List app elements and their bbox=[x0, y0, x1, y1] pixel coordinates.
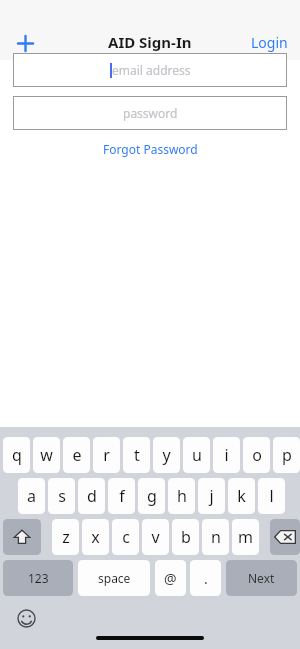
staticText: v bbox=[151, 526, 160, 548]
button[interactable]: Shift bbox=[3, 519, 41, 555]
button[interactable]: Emoji bbox=[14, 606, 38, 630]
staticText: @ bbox=[164, 569, 177, 588]
button[interactable]: a bbox=[18, 478, 45, 514]
button[interactable]: p bbox=[273, 437, 300, 473]
button[interactable]: x bbox=[82, 519, 109, 555]
button[interactable]: z bbox=[52, 519, 79, 555]
staticText: b bbox=[181, 526, 191, 548]
button[interactable]: email address bbox=[13, 53, 287, 87]
button[interactable]: h bbox=[168, 478, 195, 514]
staticText: Forgot Password bbox=[103, 141, 198, 157]
staticText: p bbox=[282, 444, 292, 466]
staticText: s bbox=[58, 485, 66, 507]
staticText: . bbox=[204, 569, 208, 588]
staticText: y bbox=[162, 444, 171, 466]
staticText: t bbox=[134, 444, 140, 466]
staticText: i bbox=[224, 444, 229, 466]
staticText: f bbox=[119, 485, 125, 507]
button[interactable]: t bbox=[123, 437, 150, 473]
staticText: g bbox=[147, 485, 157, 507]
button[interactable]: c bbox=[112, 519, 139, 555]
button[interactable]: o bbox=[243, 437, 270, 473]
button[interactable]: w bbox=[33, 437, 60, 473]
button[interactable]: Login bbox=[247, 29, 292, 56]
button[interactable]: b bbox=[172, 519, 199, 555]
staticText: h bbox=[177, 485, 187, 507]
button[interactable]: f bbox=[108, 478, 135, 514]
button[interactable]: l bbox=[258, 478, 285, 514]
staticText: Login bbox=[251, 33, 288, 52]
staticText: z bbox=[62, 526, 70, 548]
button[interactable]: n bbox=[202, 519, 229, 555]
staticText: password bbox=[123, 105, 178, 121]
staticText: Next bbox=[248, 570, 275, 586]
button[interactable]: y bbox=[153, 437, 180, 473]
staticText: l bbox=[269, 485, 274, 507]
button[interactable]: j bbox=[198, 478, 225, 514]
button[interactable]: Delete bbox=[270, 519, 300, 555]
button[interactable]: q bbox=[3, 437, 30, 473]
staticText: e bbox=[72, 444, 82, 466]
staticText: a bbox=[27, 485, 36, 507]
staticText: q bbox=[12, 444, 22, 466]
button[interactable]: i bbox=[213, 437, 240, 473]
button[interactable]: u bbox=[183, 437, 210, 473]
staticText: space bbox=[98, 570, 131, 586]
button[interactable]: k bbox=[228, 478, 255, 514]
staticText: j bbox=[209, 485, 214, 507]
staticText: m bbox=[238, 526, 253, 548]
staticText: d bbox=[87, 485, 97, 507]
button[interactable]: r bbox=[93, 437, 120, 473]
button[interactable]: g bbox=[138, 478, 165, 514]
button[interactable]: space bbox=[78, 560, 150, 596]
button[interactable]: m bbox=[232, 519, 259, 555]
button[interactable]: v bbox=[142, 519, 169, 555]
staticText: email address bbox=[112, 62, 191, 78]
button[interactable]: e bbox=[63, 437, 90, 473]
button[interactable]: d bbox=[78, 478, 105, 514]
button[interactable]: Next bbox=[226, 560, 297, 596]
staticText: c bbox=[122, 526, 130, 548]
button[interactable]: @ bbox=[155, 560, 186, 596]
button[interactable]: Add bbox=[8, 26, 42, 60]
staticText: u bbox=[192, 444, 202, 466]
staticText: r bbox=[103, 444, 110, 466]
button[interactable]: s bbox=[48, 478, 75, 514]
button[interactable]: . bbox=[190, 560, 221, 596]
button[interactable]: Forgot Password bbox=[93, 138, 208, 160]
staticText: n bbox=[211, 526, 221, 548]
staticText: AID Sign-In bbox=[108, 32, 192, 52]
staticText: k bbox=[237, 485, 246, 507]
button[interactable]: 123 bbox=[3, 560, 73, 596]
staticText: 123 bbox=[28, 570, 49, 586]
staticText: x bbox=[91, 526, 100, 548]
staticText: o bbox=[252, 444, 262, 466]
staticText: w bbox=[40, 444, 53, 466]
button[interactable]: password bbox=[13, 96, 287, 130]
